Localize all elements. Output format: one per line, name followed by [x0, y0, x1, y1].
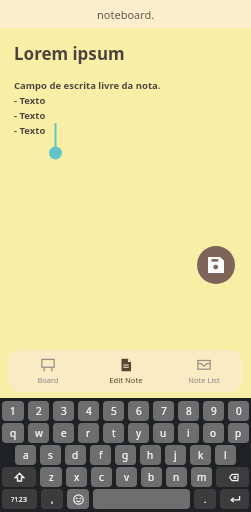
staticText: p	[235, 426, 242, 440]
staticText: Edit Note	[109, 375, 143, 385]
button[interactable]: n	[166, 467, 187, 487]
button[interactable]: b	[141, 467, 162, 487]
staticText: q	[10, 426, 17, 440]
staticText: ,	[51, 493, 54, 505]
button[interactable]: r	[78, 423, 99, 443]
staticText: .	[204, 493, 207, 505]
button[interactable]: h	[140, 445, 161, 465]
staticText: 1	[10, 404, 16, 418]
staticText: v	[124, 470, 130, 484]
button[interactable]: o	[203, 423, 224, 443]
staticText: 2	[36, 404, 42, 418]
button[interactable]: x	[66, 467, 87, 487]
button[interactable]: p	[228, 423, 249, 443]
button[interactable]: u	[153, 423, 174, 443]
staticText: Note List	[188, 375, 220, 385]
staticText: Lorem ipsum	[14, 42, 125, 65]
button[interactable]: l	[215, 445, 236, 465]
button[interactable]: c	[91, 467, 112, 487]
staticText: noteboard.	[97, 7, 155, 22]
button[interactable]: ?123	[2, 489, 37, 509]
staticText: i	[187, 426, 190, 440]
button[interactable]: e	[53, 423, 74, 443]
button[interactable]: a	[15, 445, 36, 465]
staticText: 8	[186, 404, 192, 418]
staticText: h	[147, 448, 154, 462]
staticText: j	[174, 448, 177, 462]
button[interactable]: Emoji	[67, 489, 89, 509]
button[interactable]: Shift	[2, 467, 36, 487]
button[interactable]: 4	[78, 401, 99, 421]
staticText: s	[48, 448, 53, 462]
staticText: 9	[211, 404, 217, 418]
button[interactable]: q	[2, 423, 24, 443]
staticText: r	[86, 426, 91, 440]
button[interactable]: k	[190, 445, 211, 465]
button[interactable]: g	[115, 445, 136, 465]
button[interactable]: 5	[103, 401, 124, 421]
staticText: 5	[111, 404, 117, 418]
button[interactable]: z	[40, 467, 62, 487]
button[interactable]: Enter	[220, 489, 249, 509]
button[interactable]: Note List	[165, 350, 243, 392]
button[interactable]: Space	[93, 489, 190, 509]
button[interactable]: 6	[128, 401, 149, 421]
button[interactable]: d	[65, 445, 86, 465]
button[interactable]: Board	[8, 350, 87, 392]
staticText: l	[224, 448, 227, 462]
button[interactable]: y	[128, 423, 149, 443]
button[interactable]: i	[178, 423, 199, 443]
staticText: g	[122, 448, 129, 462]
staticText: o	[210, 426, 217, 440]
button[interactable]: Backspace	[216, 467, 249, 487]
staticText: a	[23, 448, 29, 462]
staticText: 6	[136, 404, 142, 418]
staticText: u	[160, 426, 167, 440]
staticText: z	[49, 470, 54, 484]
staticText: m	[197, 470, 207, 484]
button[interactable]: 7	[153, 401, 174, 421]
staticText: y	[136, 426, 142, 440]
staticText: - Texto	[14, 124, 46, 137]
staticText: 3	[61, 404, 67, 418]
button[interactable]: Save note	[197, 246, 235, 284]
button[interactable]: 3	[53, 401, 74, 421]
staticText: Campo de escrita livre da nota.	[14, 79, 161, 92]
staticText: ?123	[11, 494, 28, 504]
button[interactable]: Edit Note	[87, 350, 165, 392]
staticText: t	[112, 426, 116, 440]
button[interactable]: .	[194, 489, 216, 509]
staticText: b	[148, 470, 155, 484]
staticText: w	[35, 426, 43, 440]
staticText: - Texto	[14, 94, 46, 107]
staticText: 7	[161, 404, 167, 418]
staticText: 4	[86, 404, 92, 418]
staticText: k	[198, 448, 204, 462]
staticText: 0	[236, 404, 242, 418]
button[interactable]: j	[165, 445, 186, 465]
button[interactable]: ,	[41, 489, 63, 509]
staticText: n	[173, 470, 180, 484]
staticText: x	[74, 470, 80, 484]
button[interactable]: w	[28, 423, 49, 443]
staticText: Board	[37, 375, 59, 385]
button[interactable]: f	[90, 445, 111, 465]
button[interactable]: t	[103, 423, 124, 443]
button[interactable]: s	[40, 445, 61, 465]
staticText: c	[99, 470, 104, 484]
button[interactable]: 9	[203, 401, 224, 421]
staticText: f	[99, 448, 103, 462]
button[interactable]: 8	[178, 401, 199, 421]
staticText: e	[61, 426, 67, 440]
button[interactable]: 0	[228, 401, 249, 421]
staticText: d	[72, 448, 79, 462]
button[interactable]: m	[191, 467, 212, 487]
staticText: - Texto	[14, 109, 46, 122]
button[interactable]: 1	[2, 401, 24, 421]
button[interactable]: 2	[28, 401, 49, 421]
button[interactable]: v	[116, 467, 137, 487]
